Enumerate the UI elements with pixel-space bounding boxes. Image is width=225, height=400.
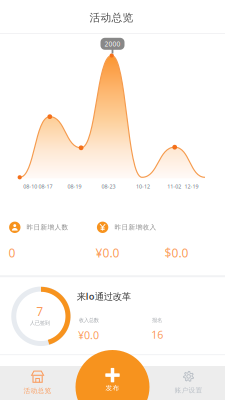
staticText: 活动总览 [89, 11, 133, 24]
staticText: 08-10 [23, 183, 37, 190]
staticText: 08-19 [67, 183, 81, 190]
staticText: 2000 [104, 39, 120, 48]
button[interactable] [0, 278, 225, 354]
staticText: 16 [151, 328, 163, 342]
staticText: 08-17 [38, 183, 52, 190]
staticText: 0 [9, 245, 16, 261]
staticText: 人已签到 [30, 320, 50, 326]
button[interactable]: 账户设置 [151, 366, 225, 400]
staticText: 10-12 [136, 183, 150, 190]
button[interactable]: 活动总览 [0, 366, 75, 400]
staticText: 12-19 [185, 183, 199, 190]
staticText: $0.0 [164, 245, 188, 261]
staticText: 11-02 [167, 183, 181, 190]
staticText: 来lo通过改革 [77, 290, 131, 302]
staticText: 活动总览 [24, 387, 52, 395]
staticText: ¥0.0 [95, 245, 119, 261]
staticText: 08-23 [101, 183, 115, 190]
staticText: 账户设置 [175, 386, 203, 394]
staticText: 昨日新增人数 [27, 223, 69, 231]
staticText: 报名 [152, 317, 162, 324]
staticText: 7 [36, 303, 43, 319]
staticText: 收入总数 [79, 317, 99, 324]
staticText: 发布 [105, 384, 119, 392]
staticText: ¥0.0 [78, 328, 99, 342]
button[interactable]: 发布 [75, 350, 149, 400]
staticText: 昨日新增收入 [114, 223, 156, 231]
